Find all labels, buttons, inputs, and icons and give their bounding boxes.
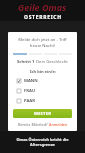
button[interactable]: PAAR bbox=[17, 98, 73, 104]
staticText: Schritt 1 bbox=[17, 59, 36, 65]
button[interactable]: FRAU bbox=[17, 88, 73, 94]
staticText: MANN bbox=[24, 78, 38, 84]
staticText: Ich bin ein/e: bbox=[30, 69, 56, 74]
staticText: OSTERREICH bbox=[24, 14, 62, 21]
staticText: Melde dich jetzt an - Triff heute Nacht! bbox=[14, 37, 71, 49]
staticText: Anmelden bbox=[49, 122, 68, 126]
staticText: Bereits Mitglied? bbox=[18, 122, 49, 126]
button[interactable]: Bereits Mitglied? bbox=[18, 122, 68, 126]
staticText: Omas Österreich bricht die Altersgrenze bbox=[4, 137, 81, 147]
staticText: Geile Omas bbox=[18, 1, 67, 13]
staticText: Dein Geschlecht bbox=[36, 59, 68, 65]
button[interactable]: MANN bbox=[17, 78, 73, 84]
button[interactable]: WEITER bbox=[13, 109, 72, 118]
staticText: FRAU bbox=[24, 88, 36, 94]
staticText: PAAR bbox=[24, 98, 35, 104]
staticText: WEITER bbox=[34, 111, 52, 117]
